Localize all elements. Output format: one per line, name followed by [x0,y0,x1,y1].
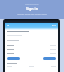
button[interactable]: Primary action [7,57,20,60]
staticText: Sign in [26,6,39,11]
staticText: WELCOME BACK [25,3,39,5]
staticText: a b c [52,24,56,26]
staticText: Securely access your account today [17,13,47,15]
button[interactable]: Secondary action [43,57,56,60]
staticText: Hi [7,24,9,26]
